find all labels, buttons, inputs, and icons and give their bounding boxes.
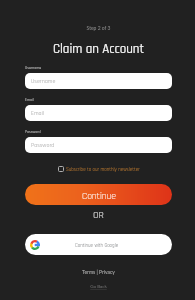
staticText: OR xyxy=(1,209,195,222)
staticText: Email xyxy=(25,97,34,102)
staticText: Claim an Account xyxy=(1,41,195,58)
staticText: Continue with Google xyxy=(75,242,119,248)
staticText: Email xyxy=(31,109,45,117)
other: Google xyxy=(30,240,40,250)
button[interactable]: Email xyxy=(25,105,172,121)
staticText: Password xyxy=(31,141,55,149)
staticText: Continue xyxy=(82,190,117,202)
button[interactable]: Username xyxy=(25,73,172,89)
button[interactable]: Password xyxy=(25,137,172,153)
button[interactable]: Continue with Google xyxy=(25,234,172,255)
staticText: Password xyxy=(25,129,41,134)
staticText: Step 2 of 3 xyxy=(1,25,195,31)
staticText: Subscribe to our monthly newsletter xyxy=(66,166,140,172)
staticText: Username xyxy=(25,65,42,70)
button[interactable]: Continue xyxy=(25,184,172,205)
button[interactable]: Subscribe to our monthly newsletter xyxy=(58,166,140,172)
button[interactable]: Go Back xyxy=(1,284,195,289)
button[interactable]: Terms | Privacy xyxy=(1,269,195,275)
staticText: Username xyxy=(31,77,56,85)
